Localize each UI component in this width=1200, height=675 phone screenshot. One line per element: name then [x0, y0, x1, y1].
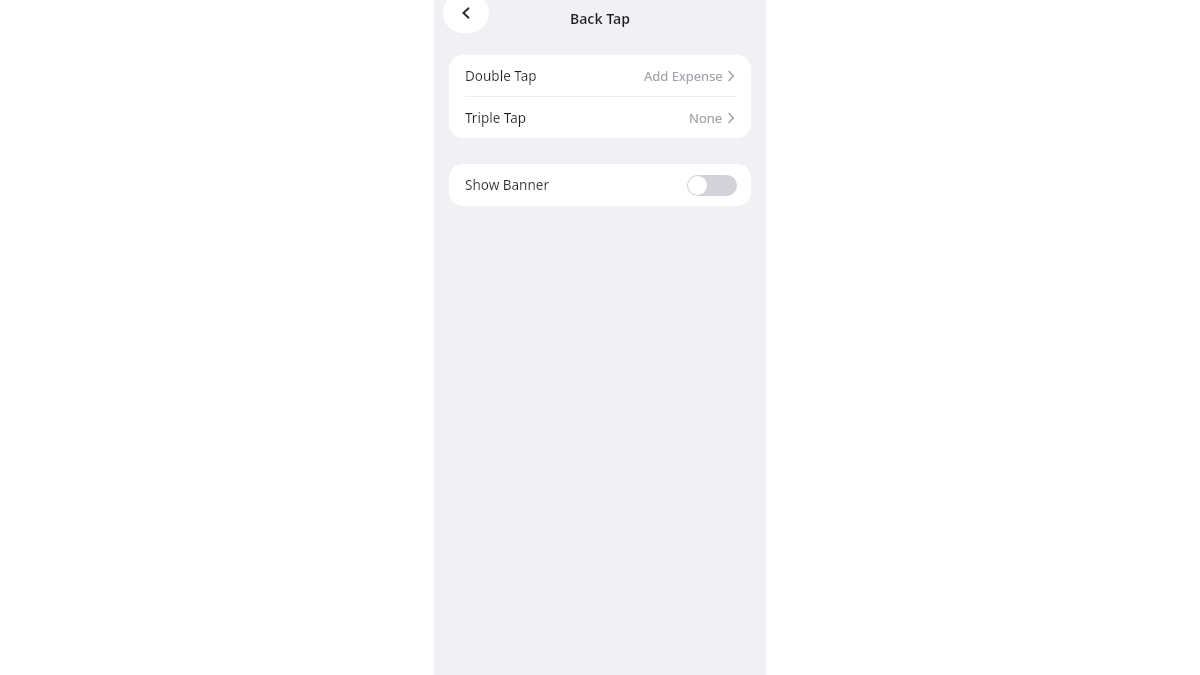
staticText: Add Expense	[644, 67, 723, 85]
staticText: Show Banner	[465, 176, 549, 194]
staticText: Back Tap	[434, 9, 766, 28]
button[interactable]: Show Banner	[449, 164, 751, 206]
button[interactable]: Show Banner toggle	[687, 175, 737, 196]
staticText: Double Tap	[465, 67, 537, 85]
staticText: None	[689, 109, 723, 127]
button[interactable]: Double Tap	[449, 55, 751, 96]
button[interactable]: Triple Tap	[449, 97, 751, 138]
button[interactable]: Back	[443, 0, 489, 33]
staticText: Triple Tap	[465, 109, 527, 127]
